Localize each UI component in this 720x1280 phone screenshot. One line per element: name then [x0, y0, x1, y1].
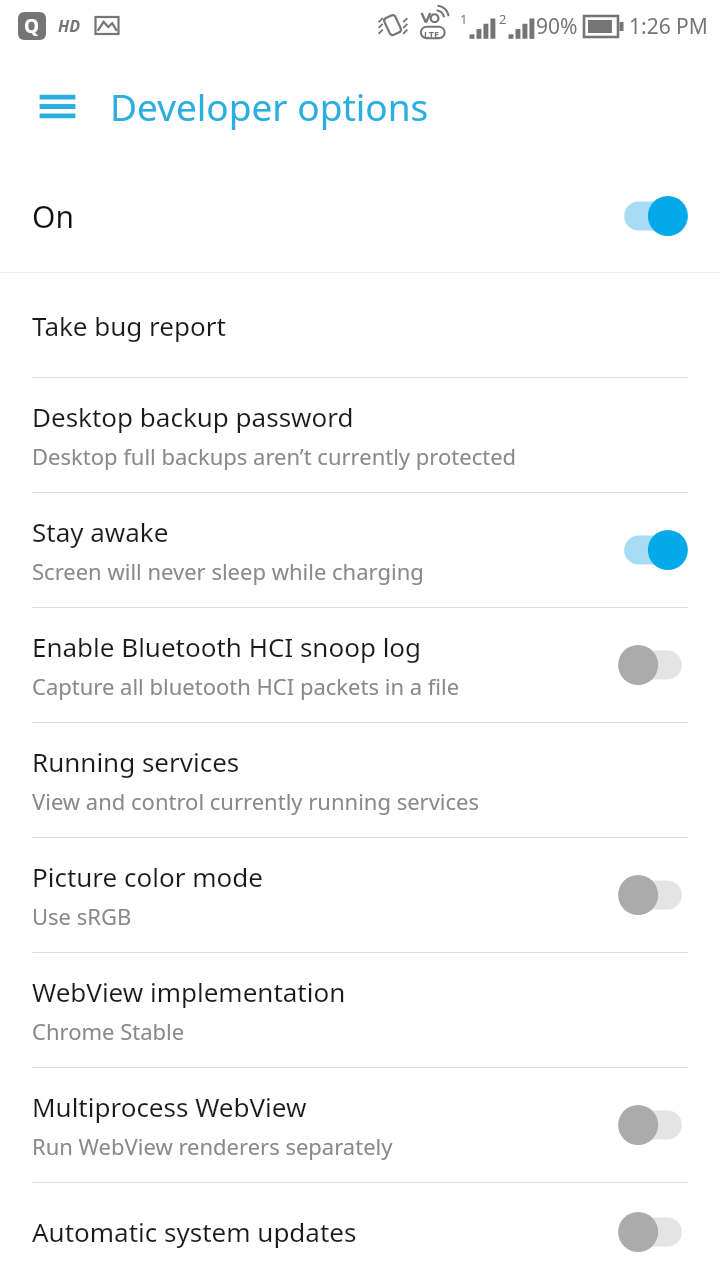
staticText: Developer options — [110, 81, 429, 131]
staticText: Multiprocess WebView — [32, 1089, 307, 1124]
staticText: Enable Bluetooth HCI snoop log — [32, 629, 422, 664]
staticText: Desktop full backups aren’t currently pr… — [32, 441, 517, 471]
staticText: 90% — [536, 12, 578, 41]
staticText: Automatic system updates — [32, 1214, 357, 1249]
button[interactable]: Take bug report — [0, 273, 720, 377]
button[interactable]: Switch off — [614, 1207, 692, 1257]
button[interactable]: Switch off — [614, 1100, 692, 1150]
staticText: Take bug report — [32, 308, 226, 343]
staticText: 1:26 PM — [629, 12, 708, 41]
staticText: Use sRGB — [32, 901, 132, 931]
button[interactable]: Stay awake — [0, 493, 720, 607]
staticText: Capture all bluetooth HCI packets in a f… — [32, 671, 460, 701]
staticText: HD — [58, 15, 81, 37]
button[interactable]: Enable Bluetooth HCI snoop log — [0, 608, 720, 722]
button[interactable]: Multiprocess WebView — [0, 1068, 720, 1182]
staticText: Stay awake — [32, 514, 169, 549]
staticText: Q — [24, 13, 40, 39]
staticText: Running services — [32, 744, 240, 779]
staticText: Chrome Stable — [32, 1016, 185, 1046]
button[interactable]: Menu — [24, 73, 90, 139]
staticText: LTE — [424, 28, 440, 40]
staticText: WebView implementation — [32, 974, 346, 1009]
button[interactable]: Desktop backup password — [0, 378, 720, 492]
button[interactable]: Running services — [0, 723, 720, 837]
staticText: 2 — [499, 10, 507, 28]
button[interactable]: On — [0, 160, 720, 272]
staticText: Run WebView renderers separately — [32, 1131, 393, 1161]
button[interactable]: Switch on — [614, 191, 692, 241]
button[interactable]: Switch off — [614, 640, 692, 690]
button[interactable]: WebView implementation — [0, 953, 720, 1067]
staticText: Screen will never sleep while charging — [32, 556, 424, 586]
button[interactable]: Switch on — [614, 525, 692, 575]
staticText: Desktop backup password — [32, 399, 354, 434]
button[interactable]: Picture color mode — [0, 838, 720, 952]
staticText: View and control currently running servi… — [32, 786, 480, 816]
button[interactable]: Automatic system updates — [0, 1183, 720, 1280]
staticText: On — [32, 196, 74, 237]
staticText: Picture color mode — [32, 859, 263, 894]
staticText: 1 — [460, 10, 468, 28]
button[interactable]: Switch off — [614, 870, 692, 920]
